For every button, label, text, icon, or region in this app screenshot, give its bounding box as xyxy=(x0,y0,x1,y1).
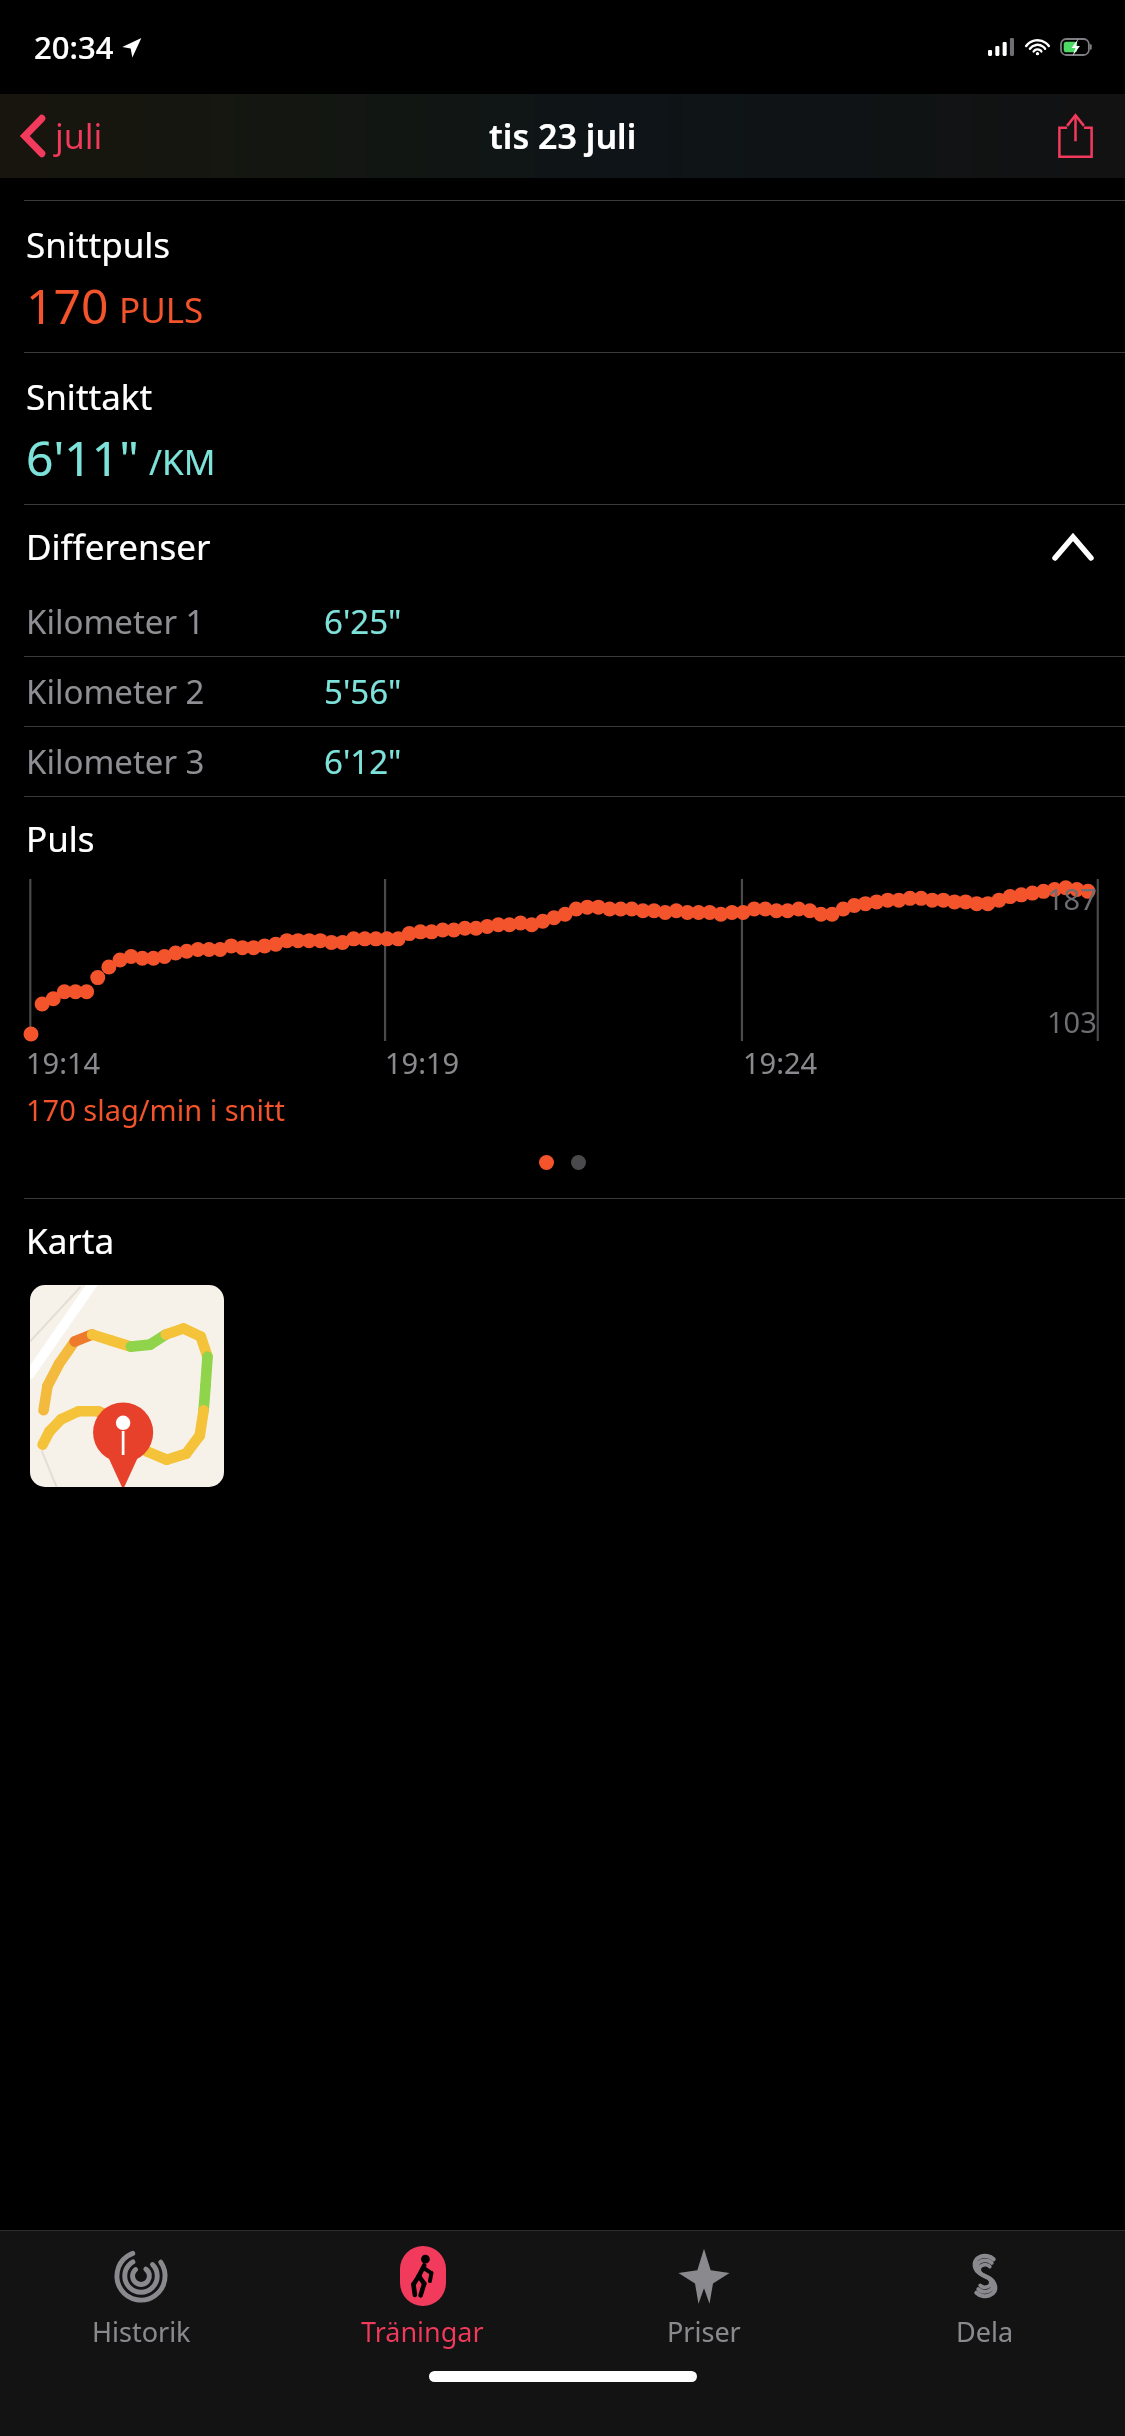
button[interactable]: Historik xyxy=(0,2231,282,2361)
staticText: juli xyxy=(55,113,103,159)
staticText: Differenser xyxy=(26,523,211,571)
button[interactable]: Differenser xyxy=(0,505,1125,587)
staticText: 19:24 xyxy=(743,1043,818,1082)
button[interactable]: Kilometer 2 xyxy=(0,657,1125,726)
staticText: Dela xyxy=(956,2313,1014,2350)
staticText: Karta xyxy=(26,1217,115,1265)
staticText: 6'12" xyxy=(324,739,402,784)
staticText: 187 xyxy=(1047,879,1097,918)
staticText: Historik xyxy=(92,2313,191,2350)
button[interactable]: Träningar xyxy=(282,2231,563,2361)
staticText: Puls xyxy=(26,815,95,863)
staticText: 20:34 xyxy=(34,26,114,68)
button[interactable]: juli xyxy=(14,103,111,169)
staticText: 170 xyxy=(26,273,109,338)
staticText: 170 slag/min i snitt xyxy=(26,1090,285,1129)
button[interactable]: Kilometer 1 xyxy=(0,587,1125,656)
other: Dölj differenser xyxy=(1055,537,1091,558)
button[interactable]: Kilometer 3 xyxy=(0,727,1125,796)
staticText: Priser xyxy=(667,2313,741,2350)
staticText: PULS xyxy=(119,286,204,334)
button[interactable]: Dela xyxy=(1050,106,1101,166)
staticText: Snittakt xyxy=(26,373,153,421)
button[interactable]: Dela xyxy=(844,2231,1125,2361)
staticText: tis 23 juli xyxy=(489,113,637,159)
staticText: Kilometer 1 xyxy=(26,599,324,644)
button[interactable]: Priser xyxy=(563,2231,844,2361)
staticText: Träningar xyxy=(361,2313,484,2350)
staticText: 5'56" xyxy=(324,669,402,714)
button[interactable]: Puls xyxy=(0,797,1125,1198)
staticText: Kilometer 2 xyxy=(26,669,324,714)
staticText: Kilometer 3 xyxy=(26,739,324,784)
button[interactable]: Snittpuls xyxy=(0,201,1125,352)
staticText: 103 xyxy=(1047,1002,1097,1041)
staticText: Snittpuls xyxy=(26,221,171,269)
staticText: 6'11" xyxy=(26,425,139,490)
staticText: 19:19 xyxy=(385,1043,460,1082)
staticText: /KM xyxy=(149,438,216,486)
button[interactable]: Karta xyxy=(30,1285,224,1487)
staticText: 19:14 xyxy=(26,1043,101,1082)
staticText: 6'25" xyxy=(324,599,402,644)
button[interactable]: Snittakt xyxy=(0,353,1125,504)
